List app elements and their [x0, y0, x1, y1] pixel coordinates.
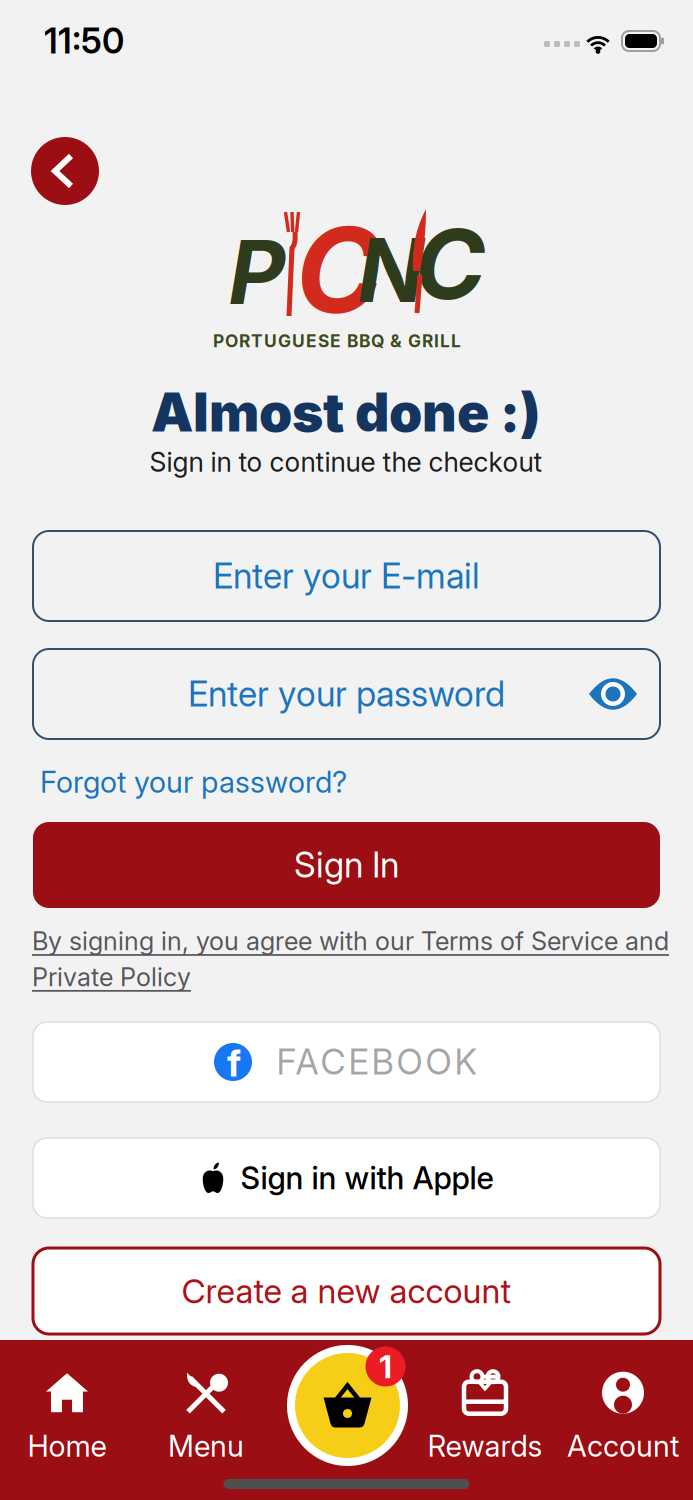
staticText: Account: [567, 1429, 679, 1463]
staticText: Enter your password: [188, 674, 505, 714]
button[interactable]: Sign in with Apple: [33, 1138, 660, 1218]
staticText: 1: [379, 1348, 392, 1385]
button[interactable]: Enter your E-mail: [33, 531, 660, 621]
button[interactable]: Enter your password: [33, 649, 660, 739]
staticText: f: [227, 1041, 241, 1085]
staticText: Sign In: [294, 845, 399, 885]
staticText: Rewards: [427, 1429, 542, 1463]
staticText: Almost done :): [151, 380, 541, 443]
staticText: P: [228, 220, 285, 324]
button[interactable]: Account: [567, 1371, 679, 1463]
staticText: Home: [27, 1429, 106, 1463]
button[interactable]: Rewards: [427, 1371, 542, 1463]
staticText: By signing in, you agree with our Terms …: [32, 926, 669, 956]
button[interactable]: Forgot your password?: [40, 765, 360, 799]
staticText: Private Policy: [32, 962, 191, 992]
staticText: Sign in to continue the checkout: [149, 446, 542, 478]
staticText: Enter your E-mail: [213, 556, 480, 596]
button[interactable]: Home: [27, 1371, 106, 1463]
button[interactable]: Menu: [168, 1371, 244, 1463]
staticText: Menu: [168, 1429, 244, 1463]
button[interactable]: f: [33, 1022, 660, 1102]
staticText: N: [357, 218, 424, 322]
button[interactable]: By signing in, you agree with our Terms …: [32, 926, 672, 992]
button[interactable]: Create a new account: [33, 1248, 660, 1334]
button[interactable]: Sign In: [33, 822, 660, 908]
button[interactable]: Cart: [287, 1345, 408, 1466]
staticText: Sign in with Apple: [240, 1160, 493, 1196]
button[interactable]: Back: [31, 137, 99, 205]
staticText: PORTUGUESE BBQ & GRILL: [213, 331, 461, 351]
staticText: C: [414, 207, 485, 321]
staticText: Create a new account: [181, 1271, 511, 1311]
staticText: C: [295, 201, 382, 339]
staticText: 11:50: [44, 21, 124, 61]
staticText: FACEBOOK: [276, 1042, 476, 1082]
staticText: Forgot your password?: [40, 765, 347, 799]
